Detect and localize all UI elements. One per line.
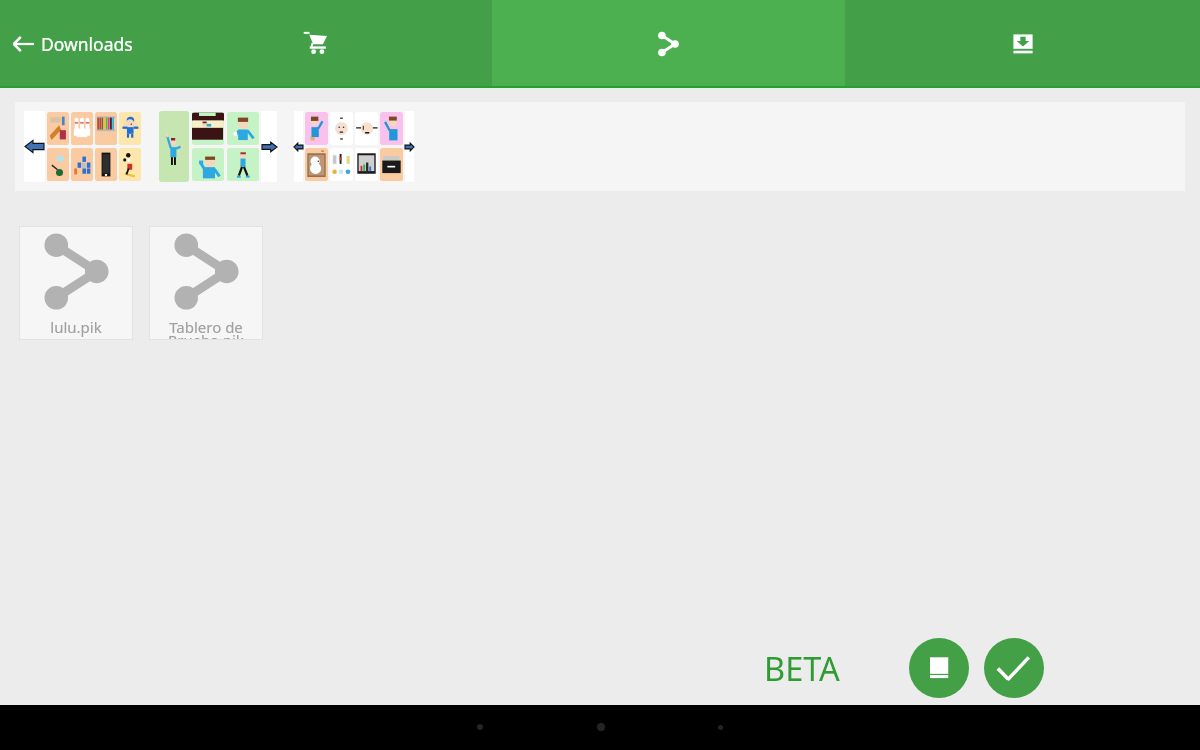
staticText: Tablero de — [149, 317, 263, 337]
button[interactable]: Done — [984, 638, 1044, 698]
button[interactable]: lulu.pik — [19, 226, 133, 340]
button[interactable]: Board: school supplies — [24, 111, 141, 182]
button[interactable]: Recent apps — [718, 725, 723, 730]
staticText: BETA — [764, 646, 840, 690]
button[interactable]: Tablero de — [149, 226, 263, 340]
staticText: Prueba.pik — [149, 330, 263, 340]
button[interactable]: Library — [909, 638, 969, 698]
button[interactable]: Home — [597, 723, 605, 731]
staticText: Downloads — [41, 32, 133, 56]
button[interactable]: Cart — [139, 0, 492, 88]
button[interactable]: Board: daily routine — [159, 111, 277, 182]
button[interactable]: Navigate up — [6, 25, 40, 63]
button[interactable]: Share — [492, 0, 845, 88]
staticText: lulu.pik — [19, 317, 133, 337]
button[interactable]: Back — [477, 724, 483, 730]
button[interactable]: Downloads — [845, 0, 1200, 88]
button[interactable]: Board: feelings — [294, 111, 414, 182]
